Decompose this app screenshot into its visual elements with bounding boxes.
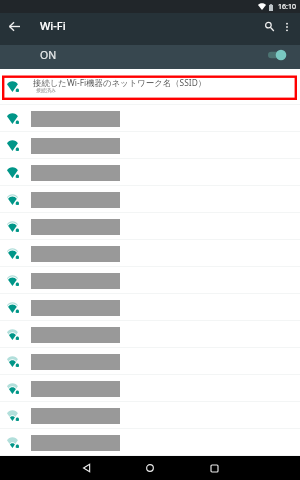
button[interactable]: Home xyxy=(135,456,165,480)
button[interactable]: Search xyxy=(257,13,282,40)
button[interactable] xyxy=(0,375,300,402)
button[interactable]: Back xyxy=(71,456,101,480)
staticText: Wi-Fi xyxy=(40,18,66,33)
button[interactable] xyxy=(0,402,300,429)
staticText: 接続済み xyxy=(36,87,57,93)
button[interactable] xyxy=(0,267,300,294)
button[interactable] xyxy=(0,213,300,240)
button[interactable] xyxy=(0,348,300,375)
button[interactable]: Recents xyxy=(199,456,229,480)
button[interactable] xyxy=(0,321,300,348)
button[interactable] xyxy=(0,132,300,159)
button[interactable] xyxy=(0,429,300,456)
button[interactable] xyxy=(0,240,300,267)
button[interactable] xyxy=(0,105,300,132)
button[interactable]: 接続したWi-Fi機器のネットワーク名（SSID） xyxy=(0,69,300,105)
staticText: 接続したWi-Fi機器のネットワーク名（SSID） xyxy=(33,77,207,88)
button[interactable]: Back xyxy=(2,13,27,40)
button[interactable]: More options xyxy=(275,13,299,40)
button[interactable] xyxy=(0,186,300,213)
button[interactable]: ON xyxy=(0,45,300,69)
button[interactable] xyxy=(0,294,300,321)
staticText: ON xyxy=(40,48,57,62)
staticText: 16:10 xyxy=(278,2,296,12)
button[interactable] xyxy=(0,159,300,186)
